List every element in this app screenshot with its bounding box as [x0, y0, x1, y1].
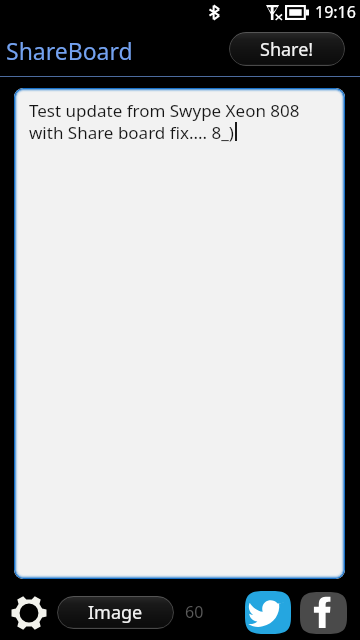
button[interactable]: Share!	[229, 32, 345, 66]
button[interactable]: Test update from Swype Xeon 808 with Sha…	[14, 88, 345, 579]
button[interactable]: Settings	[11, 595, 47, 631]
button[interactable]: Share to Facebook	[300, 592, 347, 634]
staticText: Test update from Swype Xeon 808 with Sha…	[29, 99, 300, 144]
button[interactable]: Share to Twitter	[245, 591, 291, 634]
button[interactable]: Image	[57, 596, 174, 629]
staticText: 60	[185, 601, 204, 623]
staticText: ShareBoard	[6, 35, 133, 66]
staticText: Image	[88, 600, 143, 625]
staticText: Share!	[260, 37, 314, 62]
staticText: 19:16	[315, 1, 356, 23]
